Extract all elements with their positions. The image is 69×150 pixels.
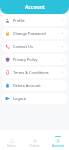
button[interactable]: Privacy Policy [2,54,67,65]
staticText: Privacy Policy [13,57,38,62]
button[interactable]: Profile [2,15,67,26]
staticText: Account [25,4,45,11]
button[interactable]: Account [46,136,69,148]
button[interactable]: Contact Us [2,41,67,52]
staticText: Logout [13,96,26,101]
button[interactable]: Terms & Conditions [2,67,67,78]
button[interactable]: Home [0,136,23,148]
button[interactable]: Delete Account [2,80,67,91]
button[interactable]: Logout [2,93,67,104]
button[interactable]: Change Password [2,28,67,39]
button[interactable]: Orders [23,136,46,148]
staticText: Home [7,144,16,148]
staticText: Account [52,144,64,148]
staticText: Change Password [13,31,46,36]
staticText: Terms & Conditions [13,70,49,75]
staticText: Profile [13,18,25,23]
staticText: Contact Us [13,44,33,49]
staticText: Orders [29,144,40,148]
staticText: Delete Account [13,83,41,88]
